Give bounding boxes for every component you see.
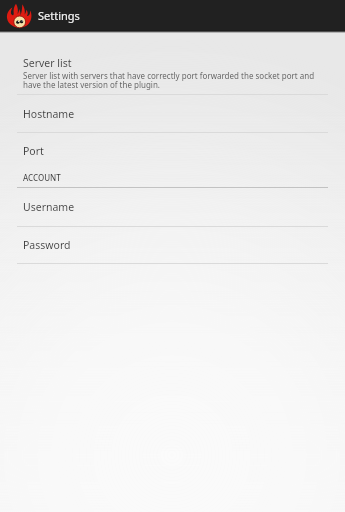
staticText: Hostname (23, 107, 75, 121)
staticText: Settings (38, 8, 80, 23)
staticText: ACCOUNT (23, 172, 61, 183)
staticText: Port (23, 144, 44, 158)
other: App icon (6, 3, 32, 29)
staticText: Username (23, 200, 75, 214)
staticText: Server list with servers that have corre… (23, 70, 323, 91)
button[interactable]: Port (0, 133, 345, 169)
button[interactable]: Server list (0, 34, 345, 94)
button[interactable]: Username (0, 188, 345, 225)
staticText: Server list (23, 56, 72, 70)
staticText: Password (23, 238, 71, 252)
button[interactable]: Hostname (0, 95, 345, 132)
button[interactable]: Password (0, 227, 345, 263)
